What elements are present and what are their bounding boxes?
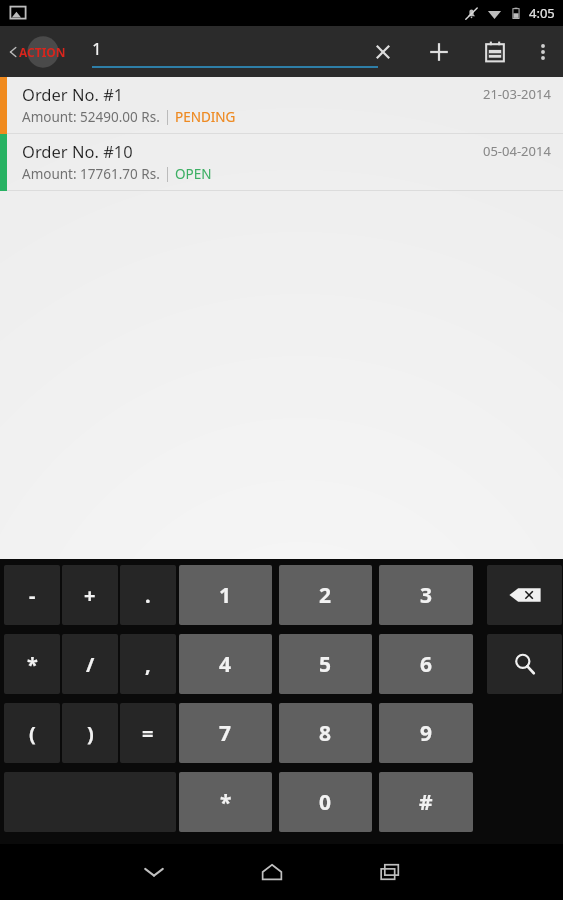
staticText: -: [29, 582, 36, 609]
staticText: .: [145, 582, 151, 609]
button[interactable]: 1: [179, 565, 272, 625]
staticText: OPEN: [175, 165, 212, 183]
staticText: 3: [420, 581, 433, 610]
button[interactable]: Hide keyboard: [120, 844, 188, 899]
button[interactable]: 6: [379, 634, 473, 694]
staticText: *: [220, 788, 232, 817]
staticText: 2: [319, 581, 332, 610]
staticText: ACTION: [19, 44, 66, 60]
staticText: *: [27, 651, 38, 678]
button[interactable]: Calendar: [467, 26, 523, 77]
staticText: 6: [420, 650, 433, 679]
staticText: (: [29, 720, 36, 747]
staticText: 21-03-2014: [483, 85, 551, 103]
button[interactable]: More options: [523, 26, 563, 77]
button[interactable]: Home: [238, 844, 306, 899]
staticText: Order No. #10: [22, 140, 133, 162]
button[interactable]: 9: [379, 703, 473, 763]
button[interactable]: -: [4, 565, 60, 625]
button[interactable]: 8: [279, 703, 372, 763]
staticText: 5: [319, 650, 332, 679]
staticText: 4: [219, 650, 232, 679]
button[interactable]: 4: [179, 634, 272, 694]
button[interactable]: =: [120, 703, 176, 763]
button[interactable]: Search: [487, 634, 562, 694]
button[interactable]: ): [62, 703, 118, 763]
button[interactable]: *: [179, 772, 272, 832]
button[interactable]: 7: [179, 703, 272, 763]
staticText: PENDING: [175, 108, 236, 126]
button[interactable]: 5: [279, 634, 372, 694]
staticText: #: [419, 788, 433, 817]
staticText: Order No. #1: [22, 83, 124, 105]
button[interactable]: Order No. #10: [0, 134, 563, 191]
button[interactable]: ,: [120, 634, 176, 694]
staticText: 8: [319, 719, 332, 748]
staticText: 7: [219, 719, 232, 748]
button[interactable]: .: [120, 565, 176, 625]
staticText: 4:05: [529, 4, 555, 22]
button[interactable]: 1: [92, 26, 378, 77]
staticText: ): [87, 720, 94, 747]
staticText: /: [86, 651, 95, 678]
button[interactable]: Clear search: [355, 26, 411, 77]
button[interactable]: Order No. #1: [0, 77, 563, 134]
staticText: +: [84, 582, 96, 609]
staticText: 9: [420, 719, 433, 748]
button[interactable]: /: [62, 634, 118, 694]
staticText: 1: [219, 581, 232, 610]
button[interactable]: Add order: [411, 26, 467, 77]
staticText: 1: [92, 37, 102, 60]
staticText: =: [142, 720, 154, 747]
button[interactable]: 3: [379, 565, 473, 625]
staticText: 05-04-2014: [483, 142, 551, 160]
button[interactable]: Backspace: [487, 565, 562, 625]
button[interactable]: 2: [279, 565, 372, 625]
button[interactable]: #: [379, 772, 473, 832]
button[interactable]: Up, Action: [0, 26, 76, 77]
staticText: ,: [145, 651, 151, 678]
button[interactable]: 0: [279, 772, 372, 832]
staticText: Amount: 52490.00 Rs.: [22, 108, 160, 126]
button[interactable]: +: [62, 565, 118, 625]
staticText: 0: [319, 788, 332, 817]
button[interactable]: Recent apps: [356, 844, 424, 899]
button[interactable]: (: [4, 703, 60, 763]
staticText: Amount: 17761.70 Rs.: [22, 165, 160, 183]
button[interactable]: *: [4, 634, 60, 694]
